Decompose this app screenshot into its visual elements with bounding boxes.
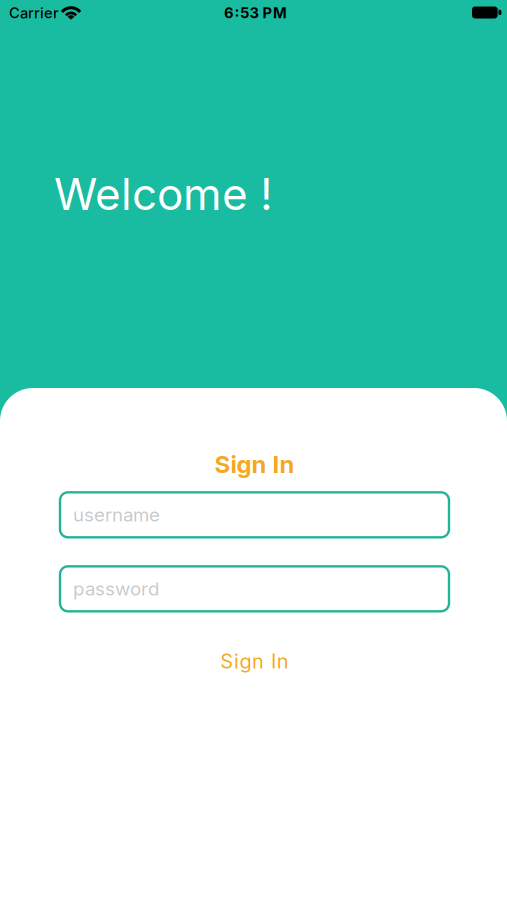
staticText: Carrier: [9, 4, 59, 22]
staticText: Welcome !: [54, 168, 273, 220]
staticText: Sign In: [214, 450, 294, 478]
staticText: password: [73, 578, 159, 600]
staticText: Sign In: [220, 649, 289, 673]
staticText: 6:53 PM: [224, 4, 287, 22]
button[interactable]: username: [60, 492, 449, 537]
button[interactable]: password: [60, 566, 449, 611]
staticText: username: [73, 504, 160, 526]
button[interactable]: Sign In: [196, 639, 313, 683]
